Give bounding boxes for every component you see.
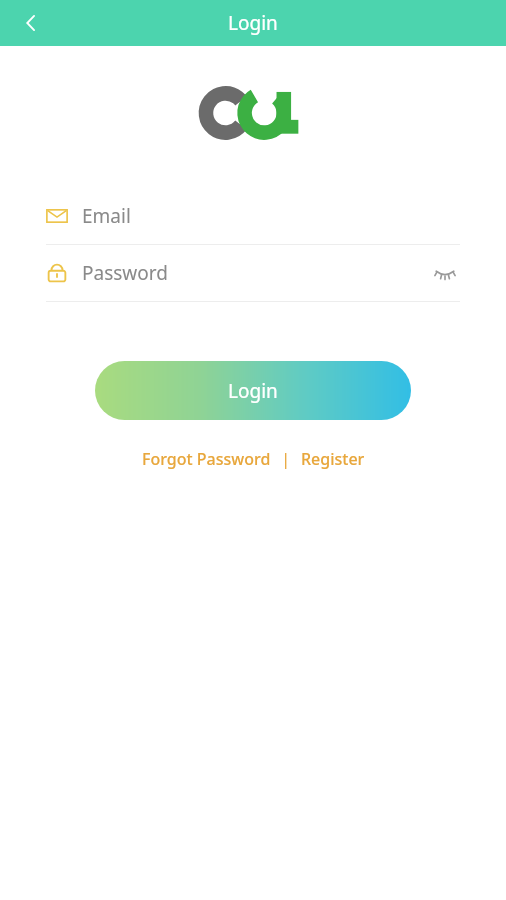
staticText: Password bbox=[82, 260, 168, 286]
button[interactable]: Email bbox=[46, 188, 460, 244]
staticText: Forgot Password bbox=[142, 448, 271, 470]
button[interactable]: Show password bbox=[430, 258, 460, 288]
staticText: | bbox=[273, 448, 299, 470]
staticText: Login bbox=[228, 378, 278, 404]
button[interactable]: Login bbox=[95, 361, 411, 420]
button[interactable]: Password bbox=[46, 245, 460, 301]
button[interactable]: Register bbox=[299, 444, 367, 474]
staticText: Email bbox=[82, 203, 131, 229]
button[interactable]: Forgot Password bbox=[140, 444, 273, 474]
staticText: Login bbox=[228, 10, 278, 36]
button[interactable]: Back bbox=[10, 2, 52, 44]
staticText: Register bbox=[301, 448, 365, 470]
